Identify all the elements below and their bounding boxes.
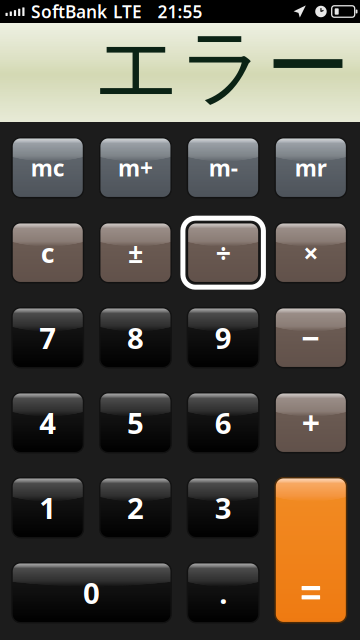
button[interactable]: .	[187, 563, 259, 623]
staticText: mc	[31, 153, 65, 183]
button[interactable]: 8	[100, 308, 171, 368]
button[interactable]: ÷	[187, 223, 259, 283]
staticText: ±	[128, 235, 143, 270]
staticText: m-	[209, 153, 238, 183]
button[interactable]: −	[275, 308, 347, 368]
staticText: 9	[215, 318, 232, 357]
staticText: 8	[127, 318, 144, 357]
staticText: −	[301, 316, 320, 359]
staticText: m+	[118, 153, 153, 183]
staticText: 6	[215, 403, 232, 442]
button[interactable]: 7	[12, 308, 83, 368]
button[interactable]: 5	[100, 393, 171, 453]
staticText: c	[41, 235, 55, 270]
staticText: 5	[127, 403, 144, 442]
button[interactable]: 9	[187, 308, 259, 368]
button[interactable]: 3	[187, 478, 259, 538]
staticText: +	[302, 401, 320, 444]
button[interactable]: ±	[100, 223, 171, 283]
staticText: 1	[39, 488, 56, 527]
button[interactable]: 2	[100, 478, 171, 538]
staticText: .	[219, 573, 227, 612]
button[interactable]: ×	[275, 223, 347, 283]
button[interactable]	[275, 478, 347, 623]
staticText: 3	[215, 488, 232, 527]
staticText: エラー	[94, 16, 350, 119]
staticText: 4	[39, 403, 56, 442]
staticText: mr	[295, 153, 327, 183]
staticText: ×	[303, 235, 318, 270]
button[interactable]: c	[12, 223, 83, 283]
button[interactable]: 0	[12, 563, 171, 623]
staticText: LTE	[113, 0, 142, 23]
staticText: 21:55	[157, 0, 202, 23]
button[interactable]: m+	[100, 138, 171, 198]
button[interactable]: +	[275, 393, 347, 453]
staticText: 7	[39, 318, 56, 357]
staticText: SoftBank	[31, 0, 107, 23]
button[interactable]: mr	[275, 138, 347, 198]
button[interactable]: m-	[187, 138, 259, 198]
button[interactable]: 1	[12, 478, 83, 538]
staticText: 2	[127, 488, 144, 527]
staticText: 0	[83, 573, 100, 612]
staticText: ÷	[216, 235, 231, 270]
button[interactable]: mc	[12, 138, 83, 198]
button[interactable]: 6	[187, 393, 259, 453]
button[interactable]: 4	[12, 393, 83, 453]
